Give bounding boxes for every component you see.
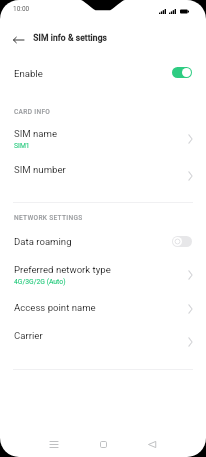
button[interactable]: Data roaming <box>0 230 206 254</box>
staticText: Access point name <box>14 302 96 313</box>
staticText: SIM name <box>14 128 58 139</box>
button[interactable]: Back <box>142 434 162 454</box>
button[interactable]: Access point name <box>0 296 206 322</box>
staticText: Preferred network type <box>14 264 111 275</box>
staticText: SIM number <box>14 164 66 175</box>
button[interactable]: Back <box>9 28 27 52</box>
staticText: 10:00 <box>13 5 30 13</box>
button[interactable]: SIM name <box>0 122 206 158</box>
staticText: 4G/3G/2G (Auto) <box>14 278 66 286</box>
staticText: Carrier <box>14 330 43 341</box>
button[interactable]: SIM number <box>0 158 206 184</box>
staticText: CARD INFO <box>14 108 51 116</box>
button[interactable]: Recents <box>44 434 64 454</box>
button[interactable]: Preferred network type <box>0 258 206 294</box>
staticText: Data roaming <box>14 236 72 247</box>
button[interactable]: Home <box>93 434 113 454</box>
button[interactable]: Toggle on <box>172 67 192 78</box>
staticText: Enable <box>14 68 43 79</box>
button[interactable]: Carrier <box>0 324 206 350</box>
button[interactable]: Enable <box>0 60 206 86</box>
button[interactable]: Toggle off <box>172 236 192 247</box>
staticText: NETWORK SETTINGS <box>14 214 83 222</box>
staticText: SIM1 <box>14 142 30 150</box>
staticText: SIM info & settings <box>33 33 107 43</box>
